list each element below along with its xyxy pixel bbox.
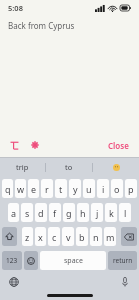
button[interactable]: k (105, 203, 117, 222)
staticText: e (31, 183, 37, 195)
button[interactable]: u (83, 179, 95, 198)
staticText: z (25, 231, 30, 243)
button[interactable]: Backspace (121, 227, 137, 246)
button[interactable]: Insert attachment (27, 137, 43, 153)
staticText: p (128, 183, 134, 195)
button[interactable]: e (28, 179, 39, 198)
button[interactable]: Switch keyboard language (7, 275, 21, 289)
button[interactable]: Shift (2, 227, 17, 246)
staticText: Close (108, 140, 129, 151)
button[interactable]: g (63, 203, 75, 222)
button[interactable]: s (21, 203, 33, 222)
button[interactable]: to (46, 158, 92, 176)
button[interactable]: z (22, 227, 33, 246)
button[interactable]: x (35, 227, 46, 246)
button[interactable]: h (77, 203, 89, 222)
button[interactable]: a (8, 203, 19, 222)
button[interactable]: 123 (2, 251, 22, 270)
staticText: b (79, 231, 85, 243)
button[interactable]: y (69, 179, 81, 198)
button[interactable]: m (104, 227, 116, 246)
staticText: j (96, 207, 99, 219)
button[interactable]: r (41, 179, 53, 198)
button[interactable]: space (40, 251, 106, 270)
staticText: x (38, 231, 43, 243)
staticText: m (106, 231, 115, 243)
staticText: o (114, 183, 120, 195)
button[interactable]: o (111, 179, 123, 198)
staticText: d (38, 207, 44, 219)
staticText: k (109, 207, 114, 219)
button[interactable]: trip (0, 158, 45, 176)
button[interactable]: l (119, 203, 131, 222)
staticText: w (17, 183, 25, 195)
button[interactable]: q (2, 179, 13, 198)
button[interactable]: i (97, 179, 109, 198)
button[interactable]: Emoji suggestion (93, 158, 139, 176)
staticText: y (73, 183, 78, 195)
staticText: l (124, 207, 127, 219)
button[interactable]: n (90, 227, 102, 246)
staticText: to (65, 162, 73, 172)
staticText: space (64, 256, 83, 266)
staticText: q (5, 183, 11, 195)
button[interactable]: d (35, 203, 47, 222)
button[interactable]: f (49, 203, 61, 222)
staticText: n (93, 231, 99, 243)
button[interactable]: Dictation (118, 275, 132, 289)
staticText: 123 (6, 256, 18, 265)
button[interactable]: v (62, 227, 74, 246)
staticText: Back from Cyprus (8, 20, 75, 31)
staticText: i (102, 183, 105, 195)
staticText: v (66, 231, 71, 243)
staticText: g (66, 207, 72, 219)
button[interactable]: Text format (6, 137, 22, 153)
button[interactable]: return (108, 251, 137, 270)
staticText: s (25, 207, 30, 219)
staticText: c (52, 231, 57, 243)
staticText: t (59, 183, 63, 195)
button[interactable]: Close (104, 136, 133, 155)
staticText: r (45, 183, 49, 195)
staticText: a (11, 207, 17, 219)
button[interactable]: c (48, 227, 60, 246)
staticText: 5:08 (8, 3, 23, 13)
staticText: return (113, 256, 133, 265)
button[interactable]: b (76, 227, 88, 246)
staticText: u (86, 183, 92, 195)
button[interactable]: j (91, 203, 103, 222)
staticText: h (80, 207, 86, 219)
button[interactable]: t (55, 179, 67, 198)
staticText: trip (16, 162, 29, 172)
button[interactable]: w (15, 179, 26, 198)
button[interactable]: Emoji keyboard (24, 251, 38, 270)
staticText: f (53, 207, 57, 219)
button[interactable]: p (125, 179, 137, 198)
